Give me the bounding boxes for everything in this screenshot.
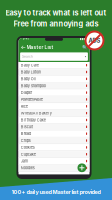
button[interactable]: Add item (77, 163, 86, 172)
button[interactable]: Diaper (18, 89, 89, 96)
button[interactable]: Cookies (18, 144, 89, 151)
staticText: 100+ daily used Master list provided (11, 189, 100, 195)
staticText: Cookies (21, 145, 35, 150)
staticText: Powder/Paste (21, 97, 43, 102)
staticText: Free from annoying ads (13, 19, 98, 28)
button[interactable]: Wheat/All Bakery (18, 110, 89, 117)
button[interactable]: Birthday Cake (18, 117, 89, 124)
button[interactable]: Baby Shampoo (18, 83, 89, 89)
staticText: Easy to track what is left out (5, 8, 106, 17)
button[interactable]: Chips (18, 137, 89, 144)
staticText: Baby Care (21, 63, 39, 67)
button[interactable]: Jam (18, 158, 89, 165)
button[interactable]: Back (20, 43, 26, 51)
button[interactable]: Baby Oil (18, 76, 89, 82)
staticText: Baby Shampoo (21, 83, 46, 88)
staticText: Biscuit (21, 124, 33, 129)
staticText: Master List (26, 44, 53, 50)
staticText: Chips (21, 138, 31, 143)
button[interactable]: Noodles (18, 165, 89, 172)
button[interactable]: Cupcake (18, 151, 89, 158)
staticText: ▮▮▮ (79, 37, 85, 40)
staticText: Jam (21, 159, 28, 163)
staticText: Cupcake (21, 152, 36, 157)
button[interactable]: Search (81, 43, 87, 51)
staticText: Diaper (21, 90, 32, 95)
staticText: Baby Lotion (21, 70, 41, 74)
staticText: 🔍 (81, 44, 87, 50)
button[interactable]: Search (18, 52, 89, 62)
staticText: Bread (21, 131, 31, 136)
staticText: ADS (88, 37, 100, 44)
button[interactable]: Bread (18, 130, 89, 137)
button[interactable]: Baby Lotion (18, 69, 89, 76)
staticText: ← (20, 44, 26, 51)
button[interactable]: Powder/Paste (18, 96, 89, 103)
staticText: Baby Oil (21, 76, 36, 81)
button[interactable]: Rice (18, 103, 89, 110)
staticText: Rice (21, 104, 28, 109)
staticText: Wheat/All Bakery (21, 111, 52, 115)
button[interactable]: Biscuit (18, 124, 89, 130)
staticText: Noodles (21, 166, 35, 170)
staticText: Search (22, 55, 33, 59)
staticText: 9:41 (22, 37, 28, 41)
button[interactable]: Baby Care (18, 62, 89, 69)
staticText: Birthday Cake (21, 118, 46, 122)
